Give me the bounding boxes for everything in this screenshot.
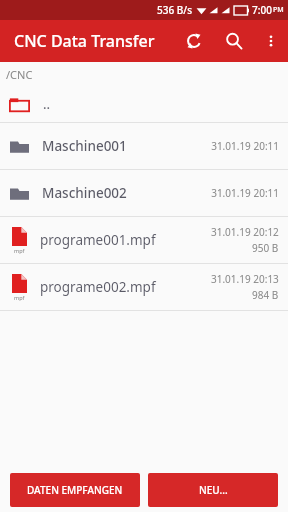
- staticText: mpf: [14, 247, 25, 254]
- staticText: 536 B/s: [157, 3, 193, 17]
- staticText: mpf: [14, 294, 25, 301]
- button[interactable]: Maschine001: [0, 123, 288, 169]
- staticText: 31.01.19 20:11: [211, 186, 279, 200]
- staticText: 7:00: [252, 3, 272, 17]
- button[interactable]: mpf: [0, 217, 288, 263]
- staticText: 31.01.19 20:11: [211, 139, 279, 153]
- button[interactable]: Refresh: [174, 21, 214, 61]
- staticText: NEU...: [199, 483, 228, 497]
- staticText: Maschine002: [42, 184, 127, 202]
- button[interactable]: ..: [0, 86, 288, 122]
- staticText: /CNC: [6, 67, 33, 82]
- button[interactable]: Search: [214, 21, 254, 61]
- staticText: programe001.mpf: [40, 231, 156, 249]
- staticText: 950 B: [252, 241, 279, 255]
- button[interactable]: mpf: [0, 264, 288, 310]
- staticText: 31.01.19 20:13: [211, 272, 279, 286]
- staticText: PM: [273, 5, 284, 15]
- button[interactable]: DATEN EMPFANGEN: [10, 473, 140, 507]
- staticText: DATEN EMPFANGEN: [27, 483, 123, 497]
- button[interactable]: NEU...: [148, 473, 278, 507]
- button[interactable]: More options: [254, 24, 288, 58]
- button[interactable]: Maschine002: [0, 170, 288, 216]
- staticText: 31.01.19 20:12: [211, 225, 279, 239]
- staticText: CNC Data Transfer: [14, 30, 155, 52]
- staticText: Maschine001: [42, 137, 127, 155]
- staticText: programe002.mpf: [40, 278, 156, 296]
- staticText: 984 B: [252, 288, 279, 302]
- staticText: ..: [43, 95, 51, 113]
